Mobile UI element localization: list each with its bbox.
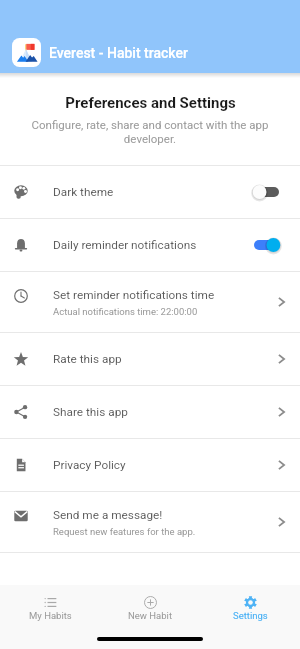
- staticText: Send me a message!: [53, 508, 163, 522]
- staticText: Preferences and Settings: [65, 94, 236, 112]
- button[interactable]: Toggle off: [252, 182, 281, 202]
- staticText: Settings: [233, 610, 268, 621]
- button[interactable]: Dark theme: [0, 166, 300, 218]
- button[interactable]: Set reminder notifications time: [0, 272, 300, 332]
- button[interactable]: Privacy Policy: [0, 439, 300, 491]
- staticText: My Habits: [29, 610, 72, 621]
- button[interactable]: Settings: [200, 585, 300, 628]
- button[interactable]: Toggle on: [252, 235, 281, 255]
- staticText: New Habit: [128, 610, 173, 621]
- staticText: Daily reminder notifications: [53, 238, 197, 252]
- staticText: Actual notifications time: 22:00:00: [53, 306, 198, 317]
- staticText: Everest - Habit tracker: [49, 45, 188, 61]
- button[interactable]: My Habits: [0, 585, 100, 628]
- staticText: Set reminder notifications time: [53, 288, 215, 302]
- staticText: Share this app: [53, 405, 128, 419]
- staticText: Request new features for the app.: [53, 526, 196, 537]
- button[interactable]: Rate this app: [0, 333, 300, 385]
- button[interactable]: Send me a message!: [0, 492, 300, 552]
- button[interactable]: Share this app: [0, 386, 300, 438]
- button[interactable]: Daily reminder notifications: [0, 219, 300, 271]
- button[interactable]: New Habit: [100, 585, 200, 628]
- staticText: Privacy Policy: [53, 458, 126, 472]
- staticText: Rate this app: [53, 352, 122, 366]
- staticText: Configure, rate, share and contact with …: [14, 118, 286, 146]
- staticText: Dark theme: [53, 185, 114, 199]
